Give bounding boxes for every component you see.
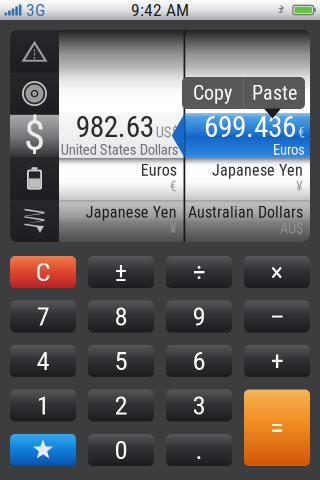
- button[interactable]: +: [244, 345, 310, 377]
- staticText: =: [270, 411, 284, 445]
- button[interactable]: ×: [244, 256, 310, 288]
- staticText: ¥: [170, 220, 177, 237]
- staticText: 0: [114, 434, 127, 466]
- button[interactable]: Paste: [244, 77, 305, 109]
- button[interactable]: 0: [88, 434, 154, 466]
- staticText: 982.63: [76, 110, 154, 144]
- button[interactable]: Copy: [182, 77, 243, 109]
- button[interactable]: 2: [88, 389, 154, 421]
- button[interactable]: Euros: [59, 158, 184, 200]
- staticText: $: [24, 110, 45, 160]
- button[interactable]: Currency: [10, 115, 59, 157]
- button[interactable]: Units: [10, 30, 59, 72]
- staticText: +: [270, 345, 283, 377]
- staticText: Australian Dollars: [188, 203, 303, 222]
- button[interactable]: 5: [88, 345, 154, 377]
- staticText: €: [298, 124, 305, 141]
- button[interactable]: –: [244, 300, 310, 332]
- button[interactable]: 4: [10, 345, 76, 377]
- button[interactable]: Japanese Yen: [59, 200, 184, 242]
- staticText: 699.436: [204, 110, 296, 144]
- staticText: ¥: [296, 178, 303, 195]
- staticText: –: [269, 301, 284, 332]
- button[interactable]: 8: [88, 300, 154, 332]
- staticText: United States Dollars: [61, 141, 179, 158]
- button[interactable]: ÷: [166, 256, 232, 288]
- button[interactable]: Australian Dollars: [185, 200, 310, 242]
- button[interactable]: .: [166, 434, 232, 466]
- staticText: Japanese Yen: [86, 203, 177, 222]
- staticText: ×: [270, 256, 283, 288]
- button[interactable]: Storage: [10, 72, 59, 115]
- staticText: .: [195, 434, 202, 466]
- button[interactable]: 1: [10, 389, 76, 421]
- button[interactable]: 6: [166, 345, 232, 377]
- staticText: 2: [114, 390, 127, 421]
- button[interactable]: 699.436: [185, 113, 310, 158]
- staticText: C: [35, 256, 50, 288]
- staticText: 3G: [26, 0, 45, 20]
- button[interactable]: Favourites: [10, 434, 76, 466]
- button[interactable]: 7: [10, 300, 76, 332]
- button[interactable]: ±: [88, 256, 154, 288]
- staticText: Japanese Yen: [212, 161, 303, 180]
- staticText: Euros: [141, 161, 177, 180]
- staticText: ÷: [192, 256, 205, 288]
- button[interactable]: Power: [10, 157, 59, 200]
- button[interactable]: C: [10, 256, 76, 288]
- staticText: AU$: [280, 220, 303, 237]
- staticText: Euros: [273, 141, 305, 158]
- staticText: 4: [36, 345, 49, 377]
- staticText: Copy: [193, 81, 232, 105]
- staticText: 5: [114, 345, 127, 377]
- staticText: 3: [192, 390, 205, 421]
- staticText: US$: [156, 124, 179, 141]
- staticText: 8: [114, 301, 127, 332]
- staticText: 7: [36, 301, 49, 332]
- button[interactable]: =: [244, 389, 310, 466]
- button[interactable]: 9: [166, 300, 232, 332]
- staticText: Paste: [252, 81, 297, 105]
- staticText: ±: [114, 256, 127, 288]
- button[interactable]: Signal: [10, 200, 59, 242]
- staticText: €: [170, 178, 177, 195]
- staticText: 9:42 AM: [131, 0, 189, 20]
- staticText: 9: [192, 301, 205, 332]
- button[interactable]: Japanese Yen: [185, 158, 310, 200]
- button[interactable]: 982.63: [59, 113, 184, 158]
- staticText: 6: [192, 345, 205, 377]
- staticText: 1: [36, 390, 49, 421]
- button[interactable]: 3: [166, 389, 232, 421]
